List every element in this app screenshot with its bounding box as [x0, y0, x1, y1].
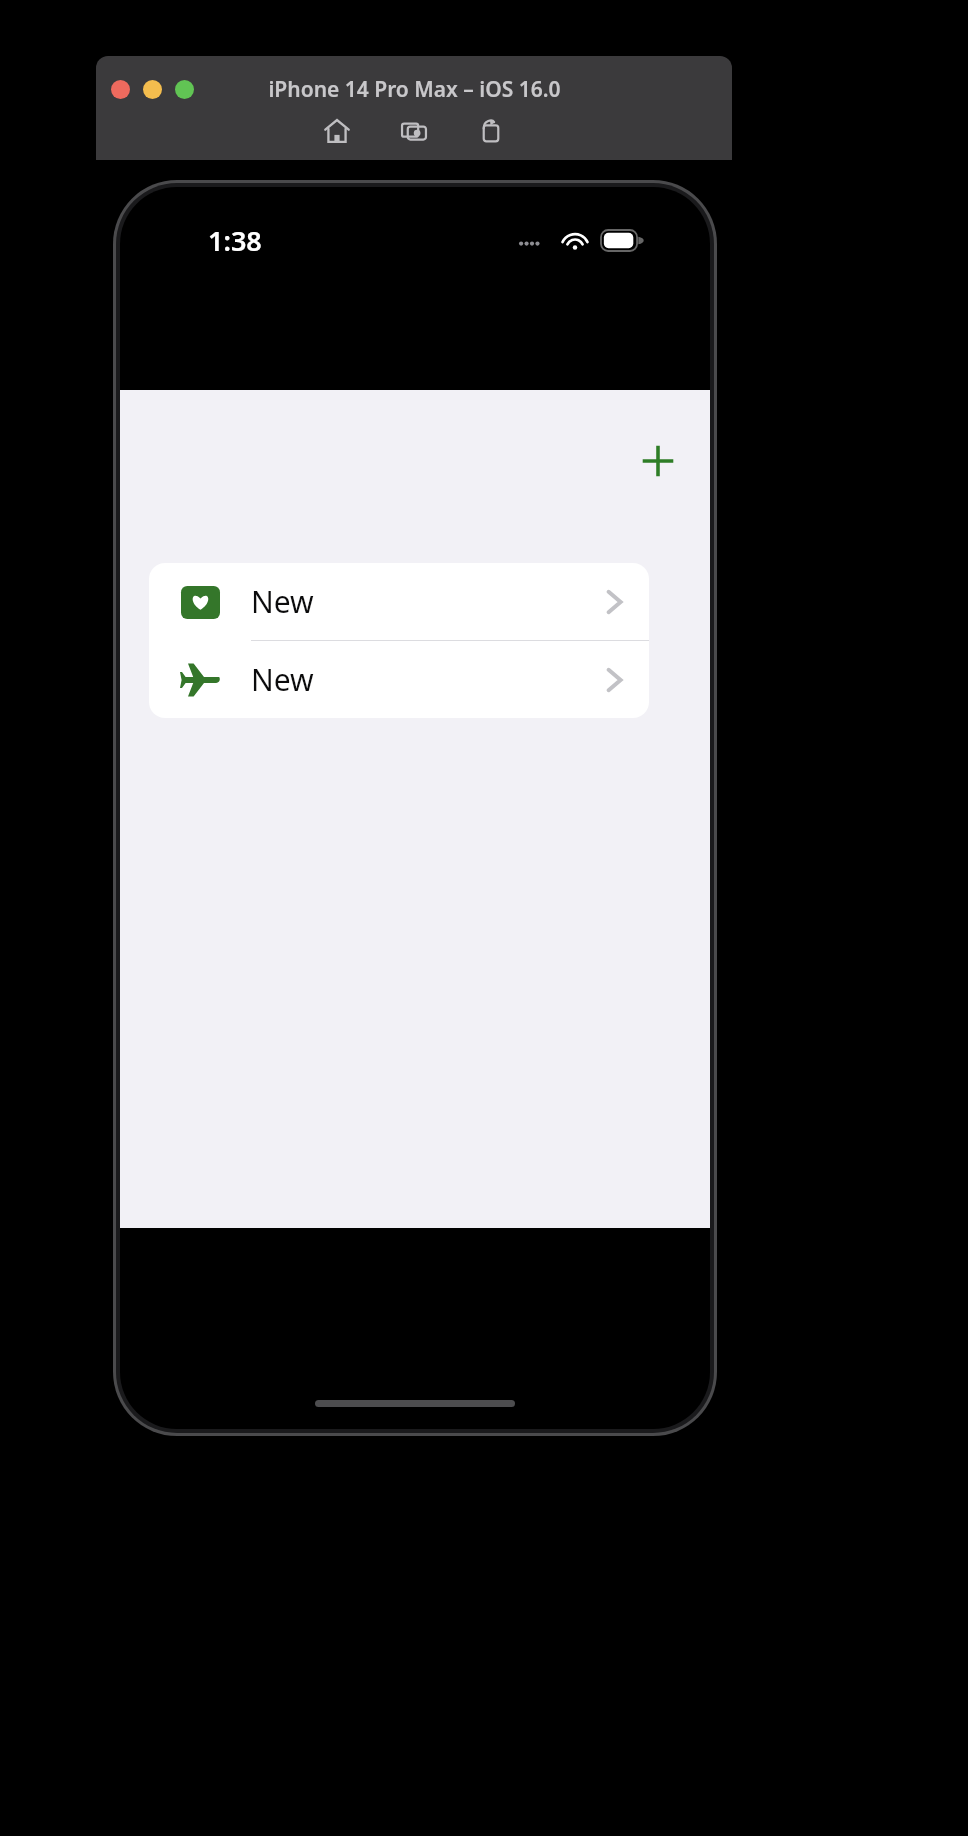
staticText: iPhone 14 Pro Max – iOS 16.0	[268, 75, 561, 104]
button[interactable]: Home	[320, 114, 354, 148]
button[interactable]: Minimize	[143, 80, 162, 99]
staticText: 1:38	[208, 222, 262, 259]
button[interactable]: Rotate	[474, 114, 508, 148]
button[interactable]: Add	[633, 436, 683, 486]
staticText: New	[251, 581, 314, 622]
button[interactable]: New	[149, 641, 649, 718]
button[interactable]: New	[149, 563, 649, 641]
button[interactable]: Screenshot	[397, 114, 431, 148]
staticText: New	[251, 659, 314, 700]
button[interactable]: Close	[111, 80, 130, 99]
button[interactable]: Zoom	[175, 80, 194, 99]
